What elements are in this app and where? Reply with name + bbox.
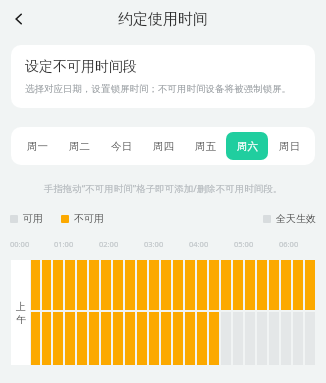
button[interactable]: 周一 (16, 132, 58, 160)
staticText: 周六 (237, 140, 258, 153)
staticText: 选择对应日期，设置锁屏时间；不可用时间设备将被强制锁屏。 (25, 83, 291, 95)
button[interactable]: 设定不可用时间段 (11, 45, 315, 108)
staticText: 周五 (195, 140, 216, 153)
staticText: 今日 (111, 140, 132, 153)
button[interactable]: 可用 (10, 212, 43, 225)
button[interactable]: 周五 (184, 132, 226, 160)
staticText: 全天生效 (276, 212, 316, 225)
staticText: 02:00 (99, 239, 119, 249)
staticText: 手指拖动“不可用时间”格子即可添加/删除不可用时间段。 (10, 182, 316, 195)
staticText: 约定使用时间 (118, 10, 208, 29)
staticText: 03:00 (144, 239, 164, 249)
staticText: 设定不可用时间段 (25, 58, 137, 76)
button[interactable]: 周日 (268, 132, 310, 160)
staticText: 不可用 (74, 212, 104, 225)
staticText: 00:00 (10, 239, 30, 249)
staticText: 周二 (69, 140, 90, 153)
button[interactable]: 全天生效 (263, 212, 316, 225)
button[interactable]: Back (0, 0, 38, 38)
button[interactable]: 不可用 (61, 212, 104, 225)
staticText: 上 (16, 300, 26, 313)
staticText: 可用 (23, 212, 43, 225)
button[interactable]: 周六 (226, 132, 268, 160)
staticText: 01:00 (54, 239, 74, 249)
staticText: 04:00 (189, 239, 209, 249)
staticText: 周一 (27, 140, 48, 153)
staticText: 午 (16, 313, 26, 326)
staticText: 周日 (279, 140, 300, 153)
button[interactable]: 周四 (142, 132, 184, 160)
button[interactable]: 今日 (100, 132, 142, 160)
button[interactable]: 周二 (58, 132, 100, 160)
staticText: 06:00 (279, 239, 299, 249)
staticText: 周四 (153, 140, 174, 153)
staticText: 05:00 (234, 239, 254, 249)
